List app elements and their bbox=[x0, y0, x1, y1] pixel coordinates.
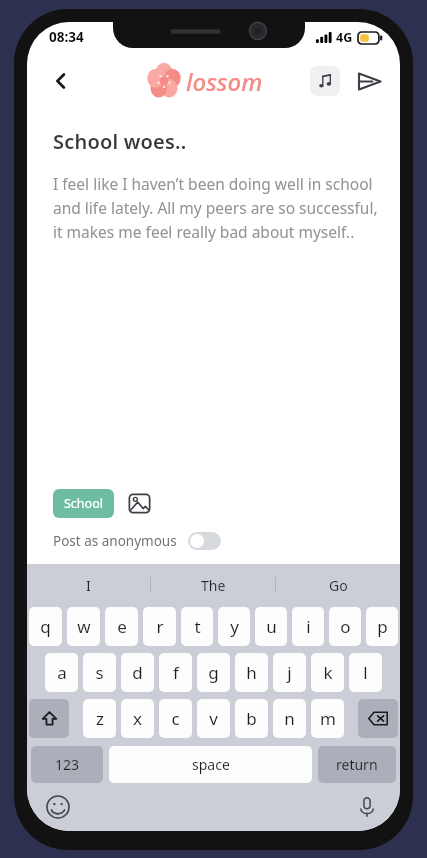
button[interactable]: t bbox=[181, 607, 213, 646]
staticText: s bbox=[95, 661, 104, 684]
staticText: b bbox=[246, 707, 257, 730]
button[interactable]: I bbox=[27, 568, 150, 602]
button[interactable]: s bbox=[83, 653, 116, 692]
button[interactable]: n bbox=[273, 699, 306, 738]
staticText: return bbox=[336, 755, 378, 774]
button[interactable]: e bbox=[105, 607, 138, 646]
staticText: w bbox=[77, 615, 91, 638]
staticText: y bbox=[230, 615, 239, 638]
button[interactable]: o bbox=[329, 607, 361, 646]
staticText: Post as anonymous bbox=[53, 532, 177, 550]
button[interactable]: x bbox=[121, 699, 154, 738]
button[interactable]: Send post bbox=[352, 64, 386, 98]
button[interactable]: Add music bbox=[310, 66, 340, 96]
button[interactable]: q bbox=[29, 607, 62, 646]
staticText: z bbox=[96, 707, 104, 730]
button[interactable]: a bbox=[45, 653, 78, 692]
staticText: h bbox=[246, 661, 257, 684]
button[interactable]: Add image bbox=[124, 488, 154, 518]
staticText: I feel like I haven’t been doing well in… bbox=[53, 173, 380, 242]
staticText: o bbox=[340, 615, 351, 638]
button[interactable]: The bbox=[151, 568, 275, 602]
staticText: v bbox=[209, 707, 218, 730]
staticText: e bbox=[117, 615, 127, 638]
staticText: lossom bbox=[186, 65, 263, 98]
button[interactable]: Back bbox=[41, 61, 81, 101]
staticText: q bbox=[40, 615, 51, 638]
button[interactable]: School bbox=[53, 489, 114, 518]
button[interactable]: p bbox=[366, 607, 398, 646]
button[interactable]: w bbox=[67, 607, 100, 646]
staticText: Go bbox=[329, 576, 348, 595]
staticText: u bbox=[266, 615, 277, 638]
button[interactable]: g bbox=[197, 653, 230, 692]
button[interactable]: d bbox=[121, 653, 154, 692]
button[interactable]: i bbox=[292, 607, 324, 646]
staticText: 08:34 bbox=[49, 28, 84, 46]
staticText: g bbox=[208, 661, 219, 684]
button[interactable]: j bbox=[273, 653, 306, 692]
button[interactable]: f bbox=[159, 653, 192, 692]
button[interactable]: Go bbox=[276, 568, 400, 602]
staticText: space bbox=[192, 755, 230, 774]
button[interactable]: y bbox=[218, 607, 250, 646]
staticText: School woes.. bbox=[53, 128, 187, 155]
staticText: x bbox=[133, 707, 142, 730]
staticText: k bbox=[323, 661, 333, 684]
staticText: 123 bbox=[55, 755, 80, 774]
staticText: r bbox=[156, 615, 164, 638]
button[interactable]: k bbox=[311, 653, 344, 692]
staticText: t bbox=[194, 615, 201, 638]
staticText: c bbox=[171, 707, 180, 730]
staticText: m bbox=[320, 707, 336, 730]
button[interactable]: Shift bbox=[29, 699, 69, 738]
button[interactable]: Emoji bbox=[43, 792, 73, 822]
staticText: School bbox=[64, 495, 103, 512]
button[interactable]: 123 bbox=[31, 746, 103, 783]
button[interactable]: space bbox=[109, 746, 312, 783]
button[interactable]: c bbox=[159, 699, 192, 738]
staticText: i bbox=[306, 615, 311, 638]
staticText: I bbox=[86, 576, 91, 595]
staticText: n bbox=[284, 707, 295, 730]
button[interactable]: z bbox=[83, 699, 116, 738]
button[interactable]: v bbox=[197, 699, 230, 738]
staticText: f bbox=[173, 661, 179, 684]
staticText: 4G bbox=[336, 29, 353, 46]
button[interactable]: Backspace bbox=[358, 699, 398, 738]
staticText: p bbox=[377, 615, 388, 638]
button[interactable]: Voice input bbox=[352, 792, 382, 822]
button[interactable]: l bbox=[349, 653, 382, 692]
button[interactable]: b bbox=[235, 699, 268, 738]
button[interactable]: return bbox=[318, 746, 396, 783]
staticText: a bbox=[57, 661, 67, 684]
button[interactable]: u bbox=[255, 607, 287, 646]
staticText: The bbox=[201, 576, 226, 595]
staticText: j bbox=[287, 661, 292, 684]
button[interactable]: Post as anonymous toggle bbox=[188, 532, 221, 550]
button[interactable]: r bbox=[143, 607, 176, 646]
staticText: d bbox=[132, 661, 143, 684]
button[interactable]: m bbox=[311, 699, 344, 738]
staticText: l bbox=[363, 661, 368, 684]
button[interactable]: h bbox=[235, 653, 268, 692]
